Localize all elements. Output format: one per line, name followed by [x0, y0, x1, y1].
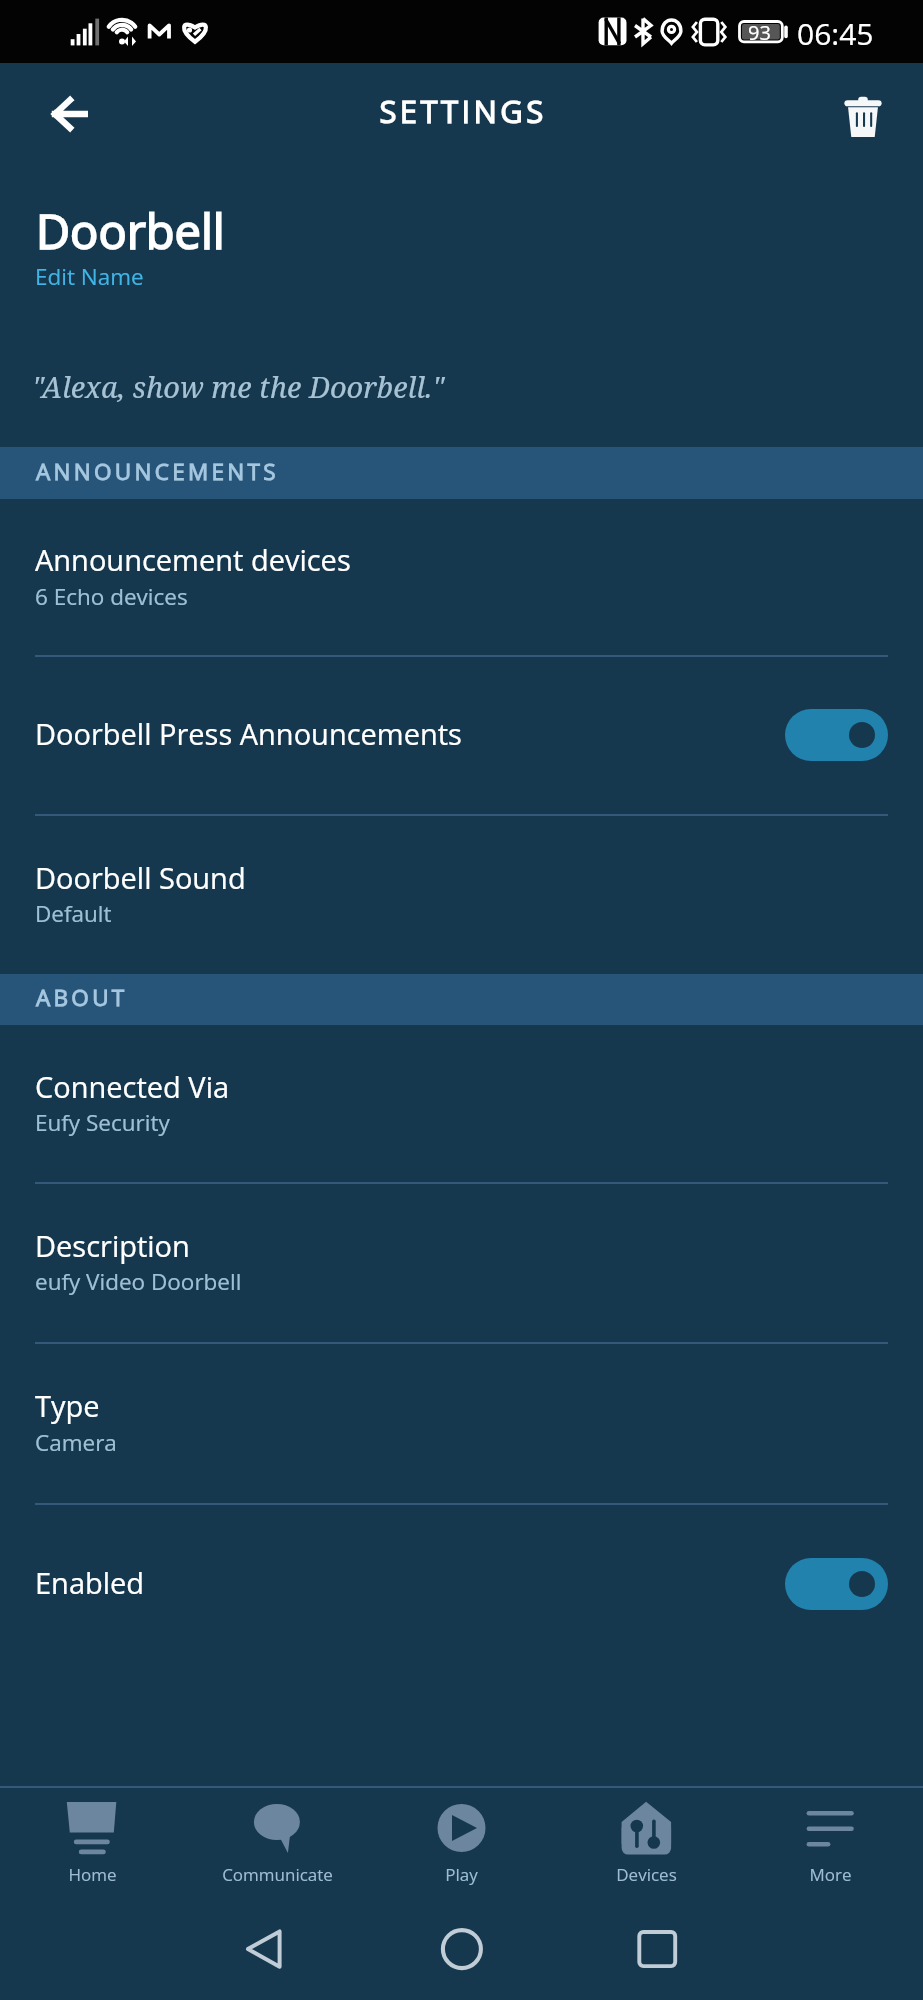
staticText: Communicate — [185, 1863, 370, 1886]
staticText: 06:45 — [797, 13, 874, 54]
staticText: ABOUT — [36, 982, 128, 1013]
staticText: Description — [35, 1226, 190, 1265]
staticText: Doorbell — [36, 199, 225, 263]
staticText: SETTINGS — [3, 90, 923, 132]
staticText: Devices — [554, 1863, 739, 1886]
staticText: Announcement devices — [35, 540, 351, 579]
staticText: Type — [35, 1386, 100, 1425]
staticText: Play — [369, 1863, 554, 1886]
staticText: 6 Echo devices — [35, 581, 188, 612]
staticText: Home — [0, 1863, 185, 1886]
staticText: "Alexa, show me the Doorbell." — [32, 367, 445, 406]
button[interactable]: Doorbell Press Announcements — [0, 656, 923, 814]
staticText: Camera — [35, 1427, 117, 1458]
staticText: Doorbell Sound — [35, 858, 246, 897]
staticText: eufy Video Doorbell — [35, 1266, 242, 1297]
button[interactable]: Enabled — [0, 1504, 923, 1664]
button[interactable]: Delete — [840, 93, 886, 139]
button[interactable]: Announcement devices — [0, 499, 923, 655]
button[interactable]: More — [738, 1788, 923, 1888]
button[interactable]: Communicate — [185, 1788, 370, 1888]
button[interactable]: Home — [0, 1788, 185, 1888]
button[interactable]: Doorbell Sound — [0, 815, 923, 974]
staticText: More — [738, 1863, 923, 1886]
button[interactable]: Devices — [554, 1788, 739, 1888]
button[interactable]: Description — [0, 1183, 923, 1342]
staticText: Connected Via — [35, 1067, 230, 1106]
staticText: Default — [35, 898, 112, 929]
button[interactable]: Type — [0, 1343, 923, 1503]
staticText: 93 — [748, 19, 771, 46]
button[interactable]: Edit Name — [35, 261, 144, 292]
button[interactable]: Back — [40, 85, 96, 141]
staticText: ANNOUNCEMENTS — [36, 456, 279, 487]
staticText: Enabled — [35, 1563, 145, 1602]
staticText: Doorbell Press Announcements — [35, 714, 462, 753]
staticText: Eufy Security — [35, 1107, 170, 1138]
button[interactable]: Connected Via — [0, 1025, 923, 1182]
button[interactable]: Play — [369, 1788, 554, 1888]
